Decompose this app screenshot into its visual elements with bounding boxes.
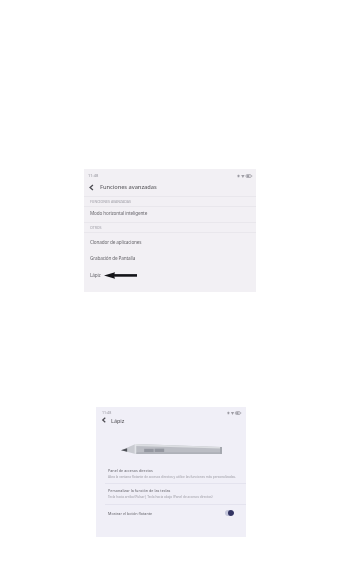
other: Back — [87, 183, 96, 192]
staticText: 11:48 — [88, 173, 99, 178]
other: Back — [100, 416, 108, 424]
staticText: Lápiz — [111, 417, 125, 424]
button[interactable]: Clonador de aplicaciones — [84, 235, 256, 248]
staticText: Lápiz — [90, 272, 101, 278]
button[interactable]: Back — [96, 414, 246, 426]
staticText: Funciones avanzadas — [100, 183, 157, 191]
staticText: Tecla hacia arriba (Pulsar), Tecla hacia… — [108, 495, 213, 499]
staticText: Clonador de aplicaciones — [90, 239, 142, 245]
button[interactable]: Panel de accesos directos — [96, 466, 246, 479]
button[interactable]: Lápiz — [84, 268, 256, 281]
staticText: Modo horizontal inteligente — [90, 210, 148, 216]
staticText: FUNCIONES AVANZADAS — [90, 199, 131, 204]
staticText: Panel de accesos directos — [108, 468, 153, 473]
staticText: Abra la ventana flotante de accesos dire… — [108, 475, 236, 479]
staticText: Grabación de Pantalla — [90, 255, 136, 261]
staticText: OTROS — [90, 225, 102, 230]
button[interactable]: Grabación de Pantalla — [84, 251, 256, 264]
staticText: 11:48 — [102, 410, 112, 415]
button[interactable]: Modo horizontal inteligente — [84, 207, 256, 219]
staticText: Personalizar la función de las teclas — [108, 488, 171, 493]
button[interactable]: Personalizar la función de las teclas — [96, 486, 246, 499]
staticText: Mostrar el botón flotante — [108, 511, 153, 516]
button[interactable]: Mostrar el botón flotante — [96, 506, 246, 520]
button[interactable]: Back — [84, 180, 256, 194]
